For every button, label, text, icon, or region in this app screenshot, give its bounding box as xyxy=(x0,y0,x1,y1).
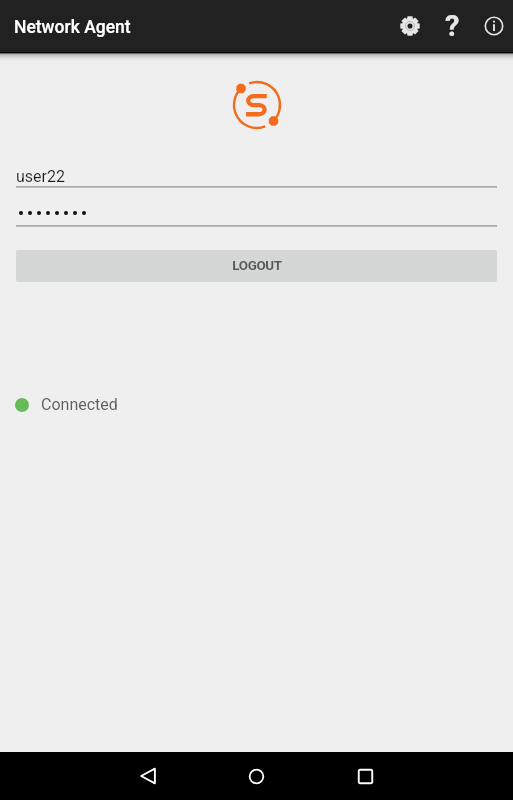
button[interactable]: LOGOUT xyxy=(16,250,497,282)
staticText: Network Agent xyxy=(14,17,131,38)
staticText: Connected xyxy=(41,395,118,414)
button[interactable]: Settings xyxy=(389,0,431,52)
button[interactable]: Back xyxy=(93,752,202,800)
button[interactable]: Info xyxy=(473,0,513,52)
button[interactable]: Help xyxy=(431,0,473,52)
staticText: LOGOUT xyxy=(232,258,282,274)
button[interactable]: Recents xyxy=(311,752,420,800)
button[interactable]: Home xyxy=(202,752,311,800)
staticText: ? xyxy=(445,9,460,43)
staticText: user22 xyxy=(16,167,65,186)
